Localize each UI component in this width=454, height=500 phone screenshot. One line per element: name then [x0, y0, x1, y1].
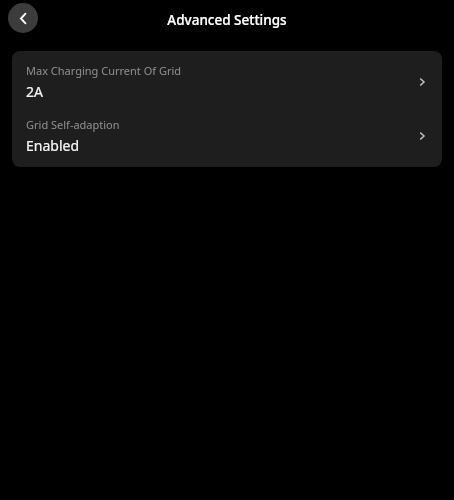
button[interactable]: Back [8, 3, 38, 33]
staticText: Max Charging Current Of Grid [26, 63, 182, 78]
staticText: Enabled [26, 136, 80, 155]
staticText: Advanced Settings [0, 11, 454, 29]
staticText: Grid Self-adaption [26, 117, 120, 132]
button[interactable]: Grid Self-adaption [12, 108, 442, 167]
button[interactable]: Max Charging Current Of Grid [12, 51, 442, 108]
staticText: 2A [26, 82, 43, 101]
